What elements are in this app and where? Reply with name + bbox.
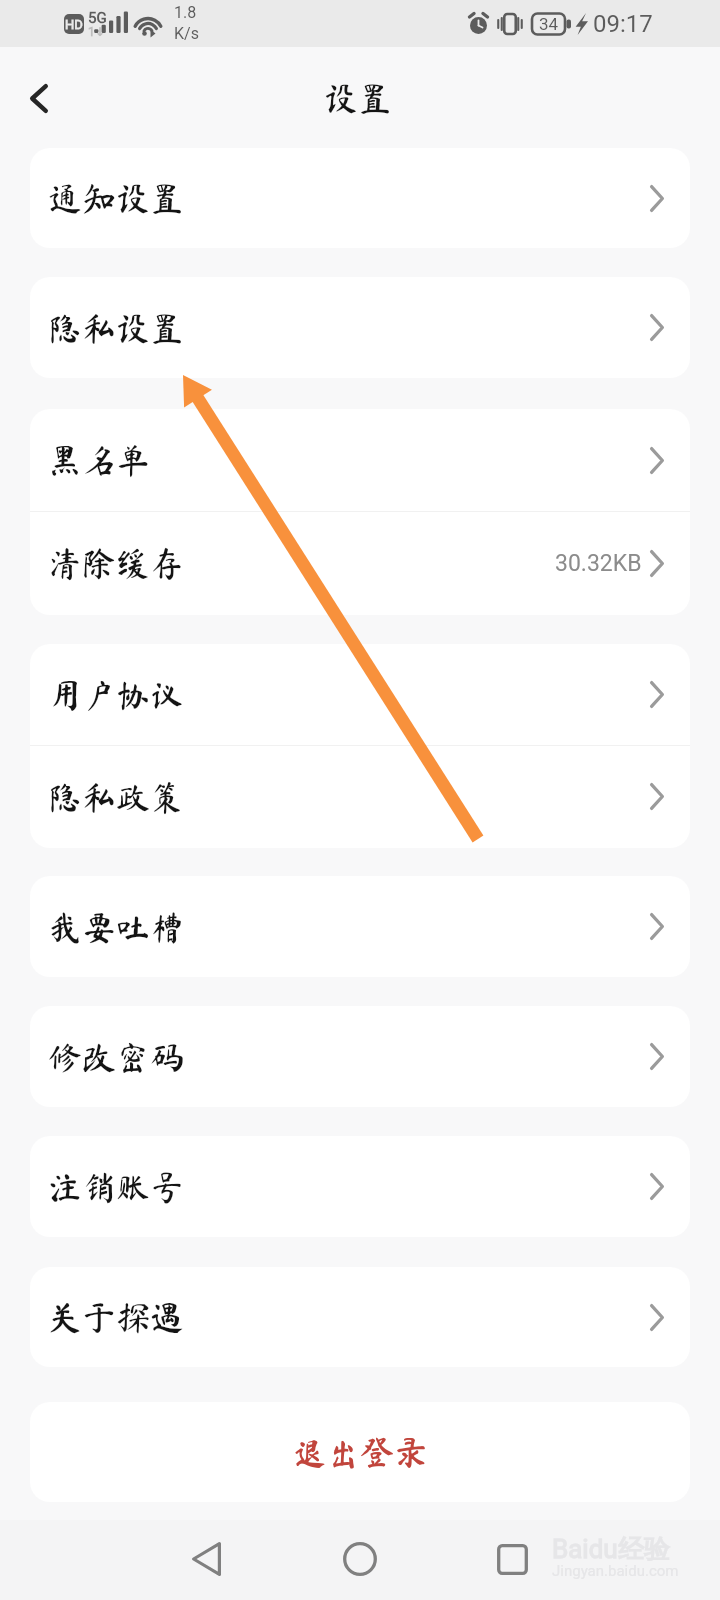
button[interactable]: Back xyxy=(176,1529,236,1589)
staticText: 34 xyxy=(539,14,559,34)
staticText: 我要吐槽 xyxy=(48,910,184,944)
staticText: 09:17 xyxy=(593,10,653,38)
staticText: 通知设置 xyxy=(48,181,184,215)
staticText: 设置 xyxy=(324,81,392,115)
button[interactable]: 隐私政策 xyxy=(30,746,690,847)
staticText: 用户协议 xyxy=(48,678,184,712)
staticText: 修改密码 xyxy=(48,1040,184,1074)
staticText: 30.32KB xyxy=(555,550,642,577)
button[interactable]: 清除缓存 xyxy=(30,512,690,614)
staticText: 关于探遇 xyxy=(48,1300,184,1334)
button[interactable]: 注销账号 xyxy=(30,1136,690,1237)
staticText: 注销账号 xyxy=(48,1170,184,1204)
staticText: 退出登录 xyxy=(292,1435,428,1469)
staticText: 清除缓存 xyxy=(48,546,184,580)
staticText: 隐私政策 xyxy=(48,780,184,814)
button[interactable]: Recent apps xyxy=(482,1529,542,1589)
button[interactable]: Back xyxy=(5,60,73,136)
button[interactable]: 我要吐槽 xyxy=(30,876,690,977)
staticText: HD xyxy=(65,17,83,32)
staticText: 隐私设置 xyxy=(48,311,184,345)
button[interactable]: 退出登录 xyxy=(30,1402,690,1502)
staticText: 黑名单 xyxy=(48,443,150,477)
button[interactable]: 关于探遇 xyxy=(30,1267,690,1367)
staticText: Baidu经验 xyxy=(552,1533,670,1566)
button[interactable]: 修改密码 xyxy=(30,1006,690,1107)
staticText: 5G xyxy=(88,9,107,27)
staticText: Jingyan.baidu.com xyxy=(552,1562,679,1580)
button[interactable]: 黑名单 xyxy=(30,409,690,511)
staticText: K/s xyxy=(174,24,199,43)
staticText: 1↓ xyxy=(88,25,105,39)
button[interactable]: 通知设置 xyxy=(30,148,690,248)
button[interactable]: 用户协议 xyxy=(30,644,690,745)
staticText: 1.8 xyxy=(174,3,197,22)
button[interactable]: 隐私设置 xyxy=(30,277,690,378)
button[interactable]: Home xyxy=(330,1529,390,1589)
